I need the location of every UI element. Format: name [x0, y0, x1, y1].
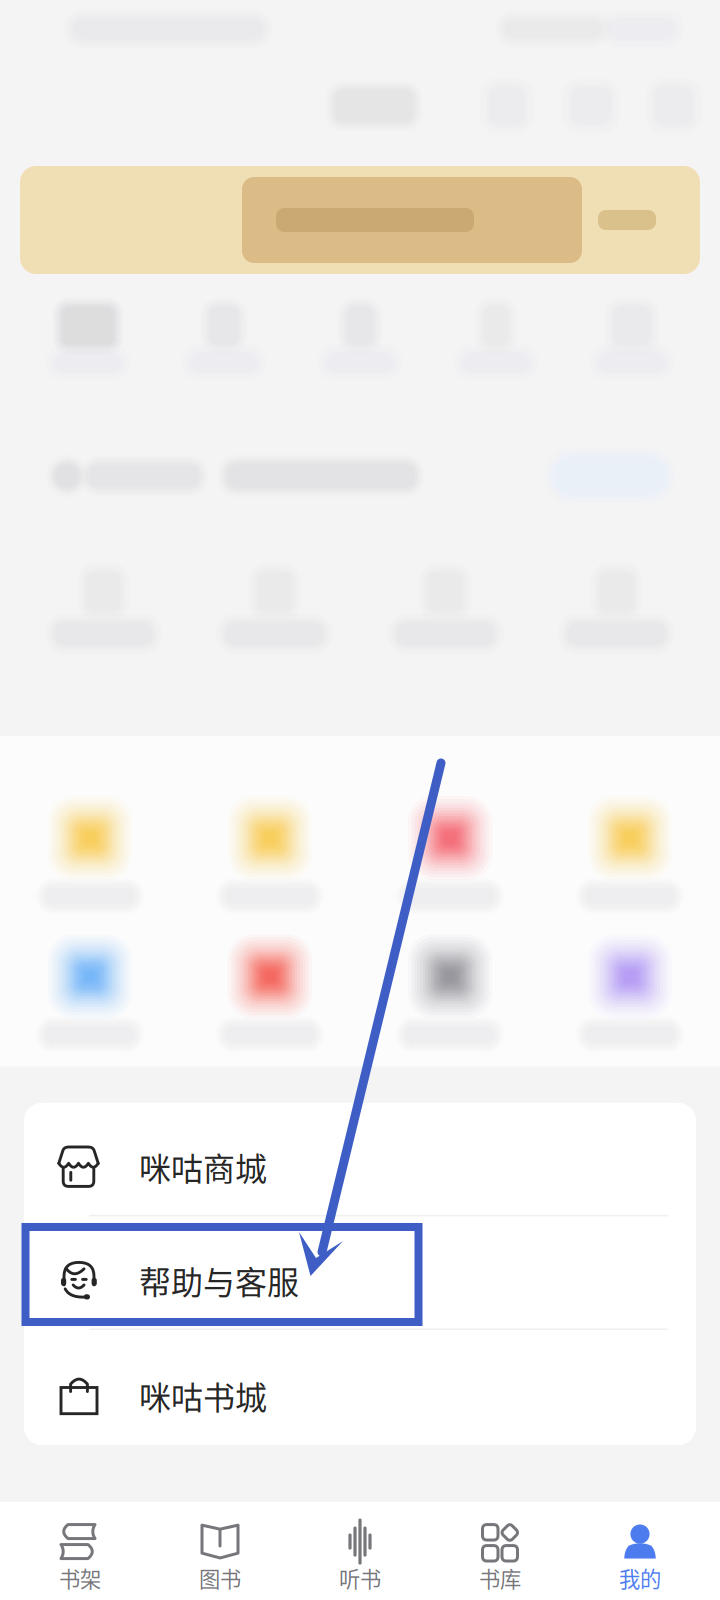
button[interactable]: 听书: [290, 1501, 430, 1600]
button[interactable]: 帮助与客服: [24, 1216, 696, 1328]
button[interactable]: 我的: [570, 1501, 710, 1600]
staticText: 帮助与客服: [139, 1257, 299, 1303]
staticText: 咪咕商城: [139, 1144, 267, 1190]
staticText: 咪咕书城: [139, 1372, 267, 1419]
button[interactable]: 咪咕书城: [24, 1330, 696, 1445]
staticText: 我的: [619, 1563, 661, 1593]
button[interactable]: 图书: [150, 1501, 290, 1600]
button[interactable]: 书库: [430, 1501, 570, 1600]
button[interactable]: 书架: [10, 1501, 150, 1600]
staticText: 书库: [479, 1563, 521, 1593]
staticText: 图书: [199, 1563, 241, 1593]
staticText: 书架: [59, 1563, 101, 1593]
button[interactable]: 咪咕商城: [24, 1103, 696, 1215]
staticText: 听书: [339, 1563, 381, 1593]
